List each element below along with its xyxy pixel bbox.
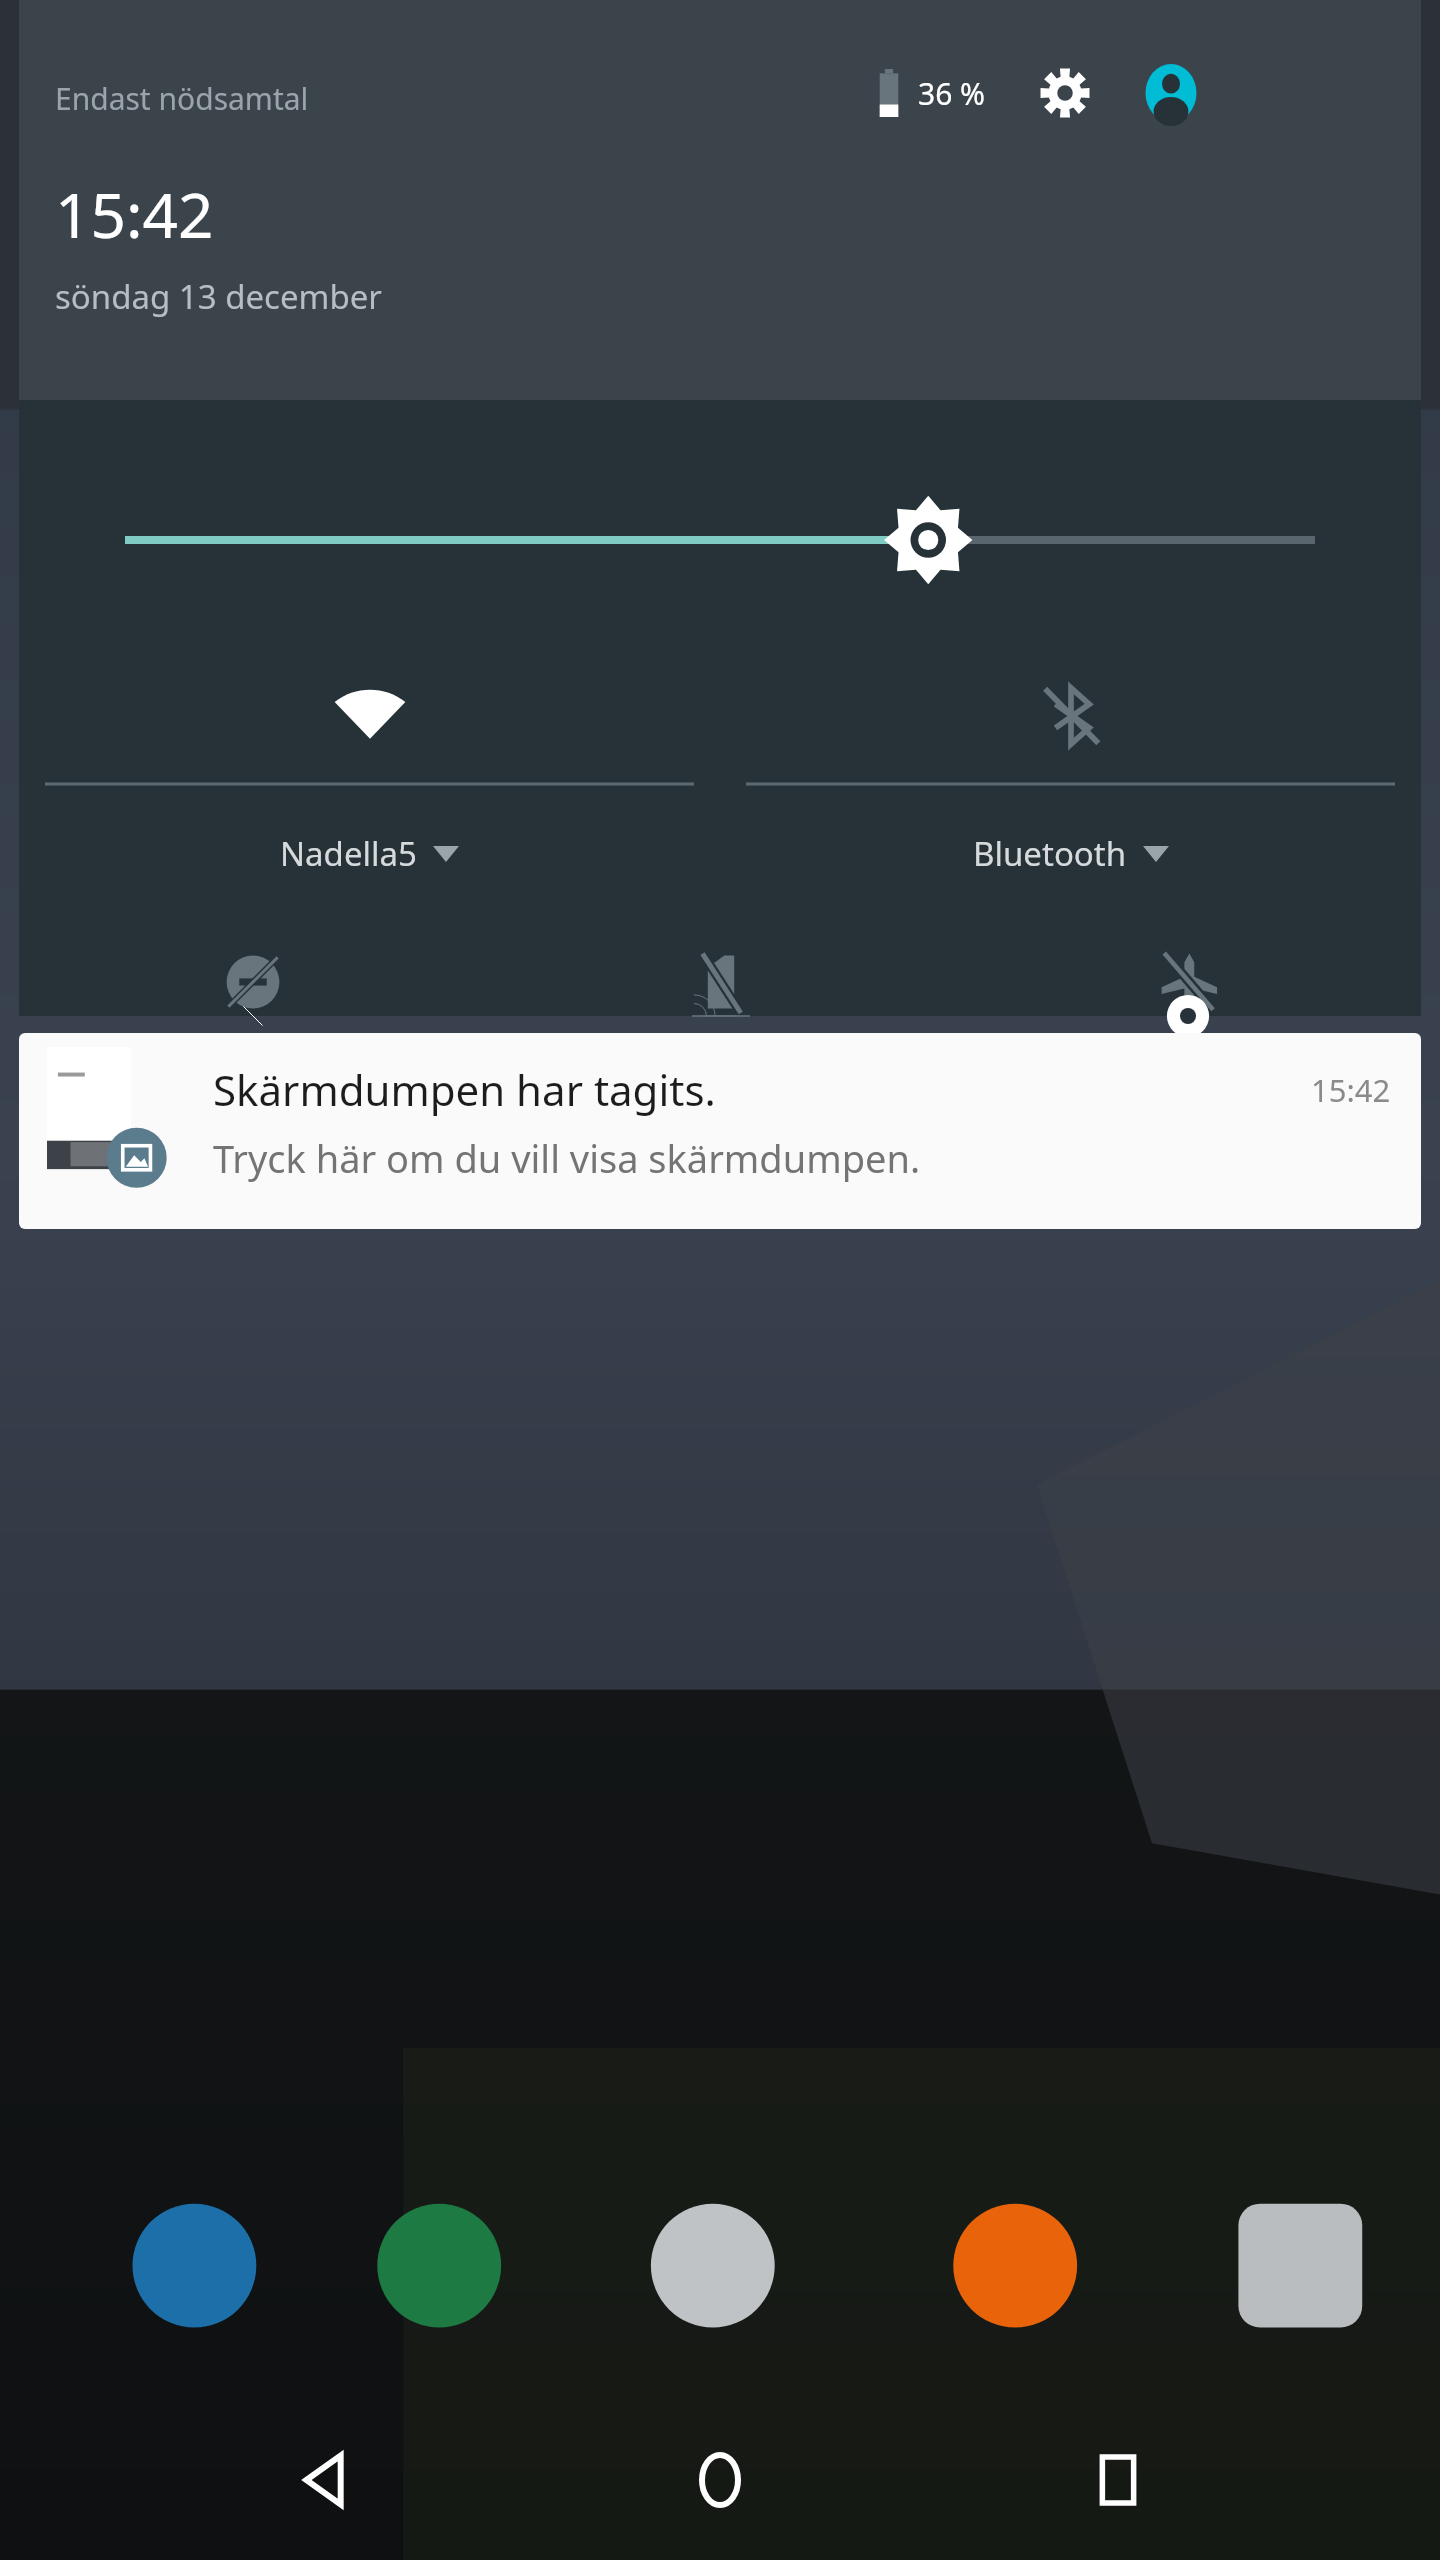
button[interactable]: Back bbox=[248, 2405, 398, 2555]
button[interactable]: Brightness bbox=[125, 492, 1315, 588]
staticText: Endast nödsamtal bbox=[55, 78, 309, 119]
staticText: Nadella5 bbox=[280, 831, 417, 876]
staticText: söndag 13 december bbox=[55, 274, 382, 319]
button[interactable]: Stör ej bbox=[19, 948, 487, 1016]
button[interactable]: User bbox=[1140, 62, 1202, 124]
staticText: Skärmdumpen har tagits. bbox=[213, 1061, 716, 1118]
staticText: 15:42 bbox=[1311, 1069, 1391, 1111]
button[interactable]: Skärmdumpen har tagits. bbox=[19, 1033, 1421, 1229]
button[interactable]: Inget SIM-kort bbox=[487, 948, 954, 1016]
button[interactable]: Nadella5 bbox=[19, 662, 720, 876]
staticText: Bluetooth bbox=[973, 831, 1127, 876]
staticText: 36 % bbox=[918, 73, 986, 114]
button[interactable]: Settings bbox=[1034, 62, 1096, 124]
button[interactable]: Flygplansläge bbox=[954, 948, 1421, 1016]
staticText: 15:42 bbox=[55, 172, 214, 256]
button[interactable]: Home bbox=[645, 2405, 795, 2555]
staticText: Tryck här om du vill visa skärmdumpen. bbox=[213, 1132, 921, 1184]
button[interactable]: Bluetooth bbox=[720, 662, 1421, 876]
button[interactable]: Recent apps bbox=[1043, 2405, 1193, 2555]
